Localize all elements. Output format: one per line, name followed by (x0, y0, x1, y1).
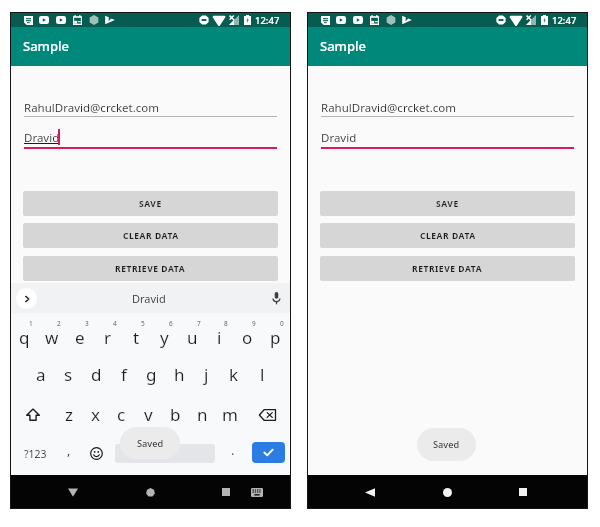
button[interactable]: x (82, 394, 109, 435)
staticText: . (231, 441, 235, 459)
button[interactable]: g (137, 354, 165, 395)
staticText: ?123 (24, 447, 47, 461)
staticText: m (222, 403, 238, 426)
button[interactable]: Enter (252, 442, 285, 463)
staticText: 5 (141, 319, 145, 328)
staticText: d (91, 363, 102, 386)
button[interactable]: 9 (233, 317, 261, 358)
button[interactable]: . (221, 433, 245, 474)
button[interactable]: z (55, 394, 82, 435)
staticText: RahulDravid@crcket.com (321, 100, 457, 116)
staticText: x (91, 403, 100, 426)
staticText: f (121, 363, 127, 386)
button[interactable]: 6 (150, 317, 178, 358)
button[interactable]: 2 (38, 317, 66, 358)
staticText: 0 (280, 319, 284, 328)
staticText: b (170, 403, 181, 426)
staticText: 8 (224, 319, 228, 328)
button[interactable]: 8 (205, 317, 233, 358)
staticText: 12:47 (255, 14, 280, 27)
button[interactable]: Voice input (266, 288, 287, 309)
button[interactable]: m (216, 394, 243, 435)
staticText: SAVE (436, 198, 459, 210)
button[interactable]: 7 (178, 317, 206, 358)
button[interactable]: ?123 (14, 433, 57, 474)
staticText: Sample (320, 37, 366, 55)
staticText: t (133, 326, 140, 349)
button[interactable]: Recent apps (212, 478, 240, 506)
staticText: p (270, 326, 281, 349)
button[interactable]: j (192, 354, 220, 395)
button[interactable]: RETRIEVE DATA (23, 256, 278, 281)
button[interactable]: Space (115, 444, 215, 463)
button[interactable]: 3 (66, 317, 94, 358)
staticText: 4 (113, 319, 117, 328)
button[interactable]: 4 (94, 317, 122, 358)
staticText: l (260, 363, 265, 386)
staticText: r (104, 326, 112, 349)
button[interactable]: RETRIEVE DATA (320, 256, 575, 281)
staticText: 12:47 (552, 14, 577, 27)
button[interactable]: SAVE (320, 191, 575, 216)
button[interactable]: Recent apps (509, 478, 537, 506)
staticText: 2 (57, 319, 61, 328)
staticText: 3 (85, 319, 89, 328)
button[interactable]: Emoji (83, 433, 109, 474)
button[interactable]: CLEAR DATA (23, 223, 278, 248)
button[interactable]: , (57, 433, 81, 474)
staticText: a (36, 363, 46, 386)
staticText: 1 (29, 319, 33, 328)
button[interactable]: 5 (122, 317, 150, 358)
button[interactable]: c (108, 394, 135, 435)
staticText: , (67, 441, 71, 459)
button[interactable]: Back (59, 478, 87, 506)
button[interactable]: 0 (261, 317, 289, 358)
staticText: h (174, 363, 185, 386)
button[interactable]: l (248, 354, 276, 395)
staticText: y (160, 326, 169, 349)
staticText: n (197, 403, 208, 426)
staticText: Sample (23, 37, 69, 55)
button[interactable]: Home (136, 478, 164, 506)
button[interactable]: a (27, 354, 55, 395)
staticText: 9 (252, 319, 256, 328)
button[interactable]: s (54, 354, 82, 395)
button[interactable]: v (135, 394, 162, 435)
staticText: Dravid (132, 291, 166, 306)
staticText: g (146, 363, 157, 386)
button[interactable]: Backspace (245, 394, 290, 435)
button[interactable]: h (165, 354, 193, 395)
staticText: v (144, 403, 153, 426)
staticText: 6 (169, 319, 173, 328)
staticText: CLEAR DATA (420, 230, 476, 242)
staticText: i (217, 326, 222, 349)
staticText: CLEAR DATA (123, 230, 179, 242)
button[interactable]: Switch keyboard (245, 480, 269, 504)
staticText: SAVE (139, 198, 162, 210)
button[interactable]: Shift (11, 394, 55, 435)
button[interactable]: CLEAR DATA (320, 223, 575, 248)
staticText: u (187, 326, 198, 349)
staticText: q (19, 326, 30, 349)
staticText: c (117, 403, 126, 426)
button[interactable]: Home (433, 478, 461, 506)
button[interactable]: Show more suggestions (16, 288, 37, 309)
button[interactable]: Back (356, 478, 384, 506)
staticText: RahulDravid@crcket.com (24, 100, 160, 116)
button[interactable]: d (82, 354, 110, 395)
staticText: Saved (433, 438, 460, 451)
button[interactable]: k (220, 354, 248, 395)
staticText: o (242, 326, 253, 349)
staticText: j (204, 363, 209, 386)
staticText: w (45, 326, 59, 349)
staticText: k (229, 363, 239, 386)
staticText: Dravid (24, 130, 60, 146)
staticText: RETRIEVE DATA (412, 263, 483, 275)
staticText: Dravid (321, 130, 357, 146)
button[interactable]: 1 (10, 317, 38, 358)
button[interactable]: f (110, 354, 138, 395)
staticText: Saved (137, 437, 164, 450)
button[interactable]: n (189, 394, 216, 435)
button[interactable]: b (162, 394, 189, 435)
button[interactable]: SAVE (23, 191, 278, 216)
